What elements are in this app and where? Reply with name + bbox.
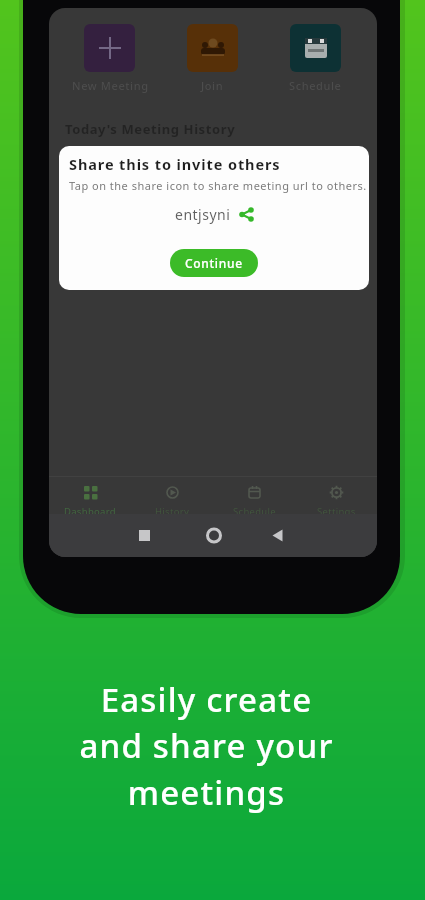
button[interactable]: Schedule	[213, 486, 295, 520]
staticText: Settings	[317, 505, 356, 518]
button[interactable]	[290, 24, 341, 72]
staticText: Share this to invite others	[69, 154, 281, 174]
button[interactable]: Settings	[295, 486, 377, 520]
button[interactable]: Continue	[170, 249, 258, 277]
button[interactable]	[187, 24, 238, 72]
staticText: New Meeting	[72, 78, 149, 93]
staticText: History	[155, 505, 190, 518]
button[interactable]: Dashboard	[49, 486, 131, 520]
staticText: Today's Meeting History	[65, 120, 236, 138]
button[interactable]: History	[131, 486, 213, 520]
button[interactable]	[84, 24, 135, 72]
staticText: Schedule	[289, 78, 342, 93]
staticText: Schedule	[233, 505, 276, 518]
staticText: Easily create and share your meetings	[79, 677, 334, 815]
staticText: Tap on the share icon to share meeting u…	[69, 178, 367, 193]
button[interactable]	[239, 207, 254, 222]
staticText: Dashboard	[64, 505, 116, 518]
staticText: Join	[201, 78, 224, 93]
staticText: Continue	[185, 255, 243, 271]
staticText: entjsyni	[175, 205, 231, 224]
